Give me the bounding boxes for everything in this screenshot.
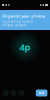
staticText: 4p xyxy=(19,41,30,53)
button[interactable]: Crop xyxy=(10,90,17,96)
staticText: Touch & hold items to xyxy=(2,20,33,23)
button[interactable]: Save xyxy=(36,89,47,96)
button[interactable]: Adjust xyxy=(18,90,24,96)
button[interactable]: Rotate xyxy=(3,90,9,96)
staticText: Organize your photos xyxy=(2,13,45,19)
staticText: Save xyxy=(39,91,45,95)
staticText: collapse, collapse. xyxy=(2,23,27,27)
